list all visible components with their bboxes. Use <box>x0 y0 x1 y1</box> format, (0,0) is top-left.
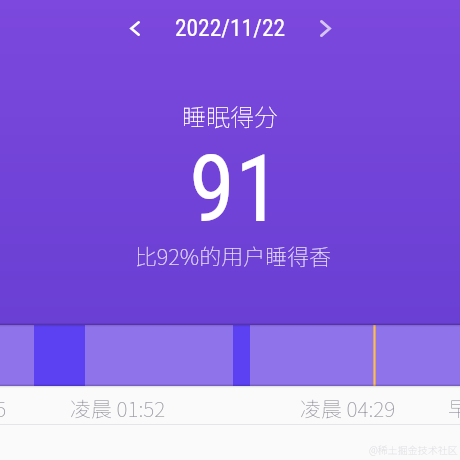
staticText: 凌晨 04:29 <box>300 393 396 423</box>
staticText: @稀土掘金技术社区 <box>369 442 458 456</box>
staticText: 深夜 23:05 <box>0 393 7 423</box>
staticText: 凌晨 01:52 <box>70 393 166 423</box>
staticText: 睡眠得分 <box>0 98 460 133</box>
staticText: 91 <box>5 135 460 244</box>
button[interactable]: Previous day <box>122 12 148 44</box>
button[interactable]: Next day <box>312 12 338 45</box>
staticText: 早 <box>448 393 460 423</box>
button[interactable]: Sleep stage timeline <box>0 325 460 386</box>
staticText: 比92%的用户睡得香 <box>3 239 460 271</box>
staticText: 2022/11/22 <box>0 14 460 42</box>
